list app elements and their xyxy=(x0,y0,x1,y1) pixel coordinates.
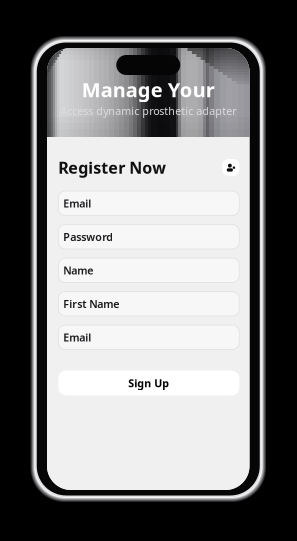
staticText: Register Now xyxy=(58,157,166,178)
button[interactable]: First Name xyxy=(58,291,239,316)
button[interactable]: Sign Up xyxy=(58,370,239,395)
staticText: Email xyxy=(63,330,91,344)
button[interactable]: Email xyxy=(58,325,239,349)
button[interactable]: Add account xyxy=(222,159,239,176)
staticText: Password xyxy=(63,230,113,244)
button[interactable]: Email xyxy=(58,191,239,215)
staticText: First Name xyxy=(63,297,119,311)
button[interactable]: Name xyxy=(58,258,239,282)
staticText: Manage Your xyxy=(82,76,215,103)
staticText: Access dynamic prosthetic adapter xyxy=(60,104,236,118)
staticText: Sign Up xyxy=(128,376,169,390)
staticText: Name xyxy=(63,263,93,277)
button[interactable]: Password xyxy=(58,224,239,249)
staticText: Email xyxy=(63,196,91,210)
